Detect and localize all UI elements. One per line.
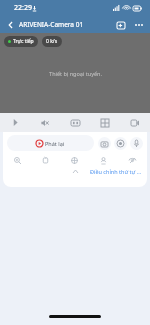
button[interactable]: Play xyxy=(0,113,30,132)
button[interactable]: Snapshot xyxy=(98,137,111,150)
staticText: 22:29 xyxy=(14,3,32,13)
button[interactable]: Add device xyxy=(115,19,127,31)
button[interactable]: Privacy xyxy=(118,154,147,166)
button[interactable]: Mute xyxy=(30,113,60,132)
button[interactable]: Record xyxy=(114,137,127,150)
button[interactable]: Alarm xyxy=(31,154,60,166)
button[interactable]: Trực tiếp xyxy=(4,36,38,47)
staticText: Điều chỉnh thứ tự ... xyxy=(90,168,142,175)
button[interactable]: PTZ xyxy=(60,154,89,166)
staticText: Thiết bị ngoại tuyến. xyxy=(49,70,102,77)
button[interactable]: Microphone xyxy=(130,137,143,150)
button[interactable]: Split view xyxy=(90,113,120,132)
button[interactable]: More options xyxy=(133,19,145,31)
button[interactable]: Collapse xyxy=(70,166,80,176)
button[interactable]: Zoom xyxy=(3,154,31,166)
staticText: 0 k/s xyxy=(46,38,58,45)
button[interactable]: Phát lại xyxy=(7,135,94,151)
button[interactable]: Back xyxy=(5,19,17,31)
button[interactable]: 0 k/s xyxy=(42,36,62,47)
staticText: Phát lại xyxy=(45,140,65,147)
staticText: ARIVENIA-Camera 01 xyxy=(19,20,84,29)
button[interactable]: Điều chỉnh thứ tự ... xyxy=(90,168,142,175)
staticText: Trực tiếp xyxy=(13,38,34,45)
button[interactable]: Quality xyxy=(60,113,90,132)
button[interactable]: Fullscreen xyxy=(120,113,150,132)
button[interactable]: People xyxy=(89,154,118,166)
